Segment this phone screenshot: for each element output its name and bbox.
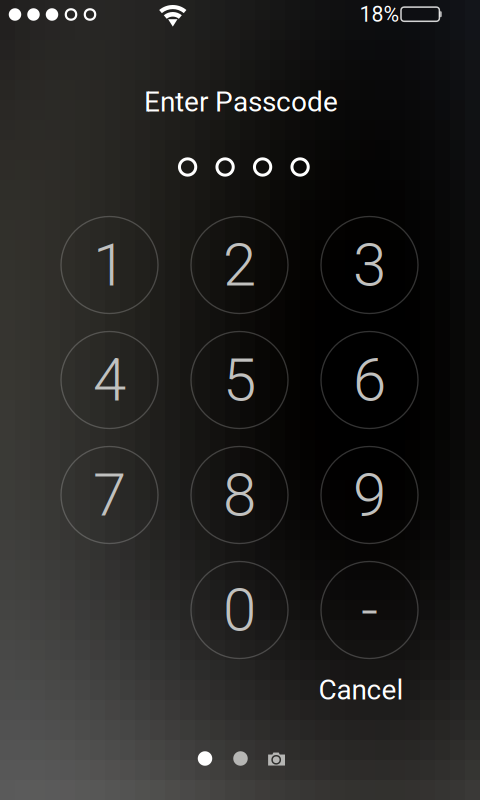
staticText: 1 [93, 230, 126, 300]
button[interactable]: 0 [191, 561, 288, 658]
staticText: - [361, 575, 378, 645]
button[interactable]: Cancel [306, 671, 416, 709]
staticText: 3 [353, 230, 386, 300]
button[interactable]: 7 [61, 446, 158, 543]
staticText: 7 [93, 460, 126, 530]
staticText: 5 [223, 345, 256, 415]
button[interactable]: 3 [321, 216, 418, 313]
staticText: 18% [359, 2, 399, 27]
staticText: 6 [353, 345, 386, 415]
button[interactable]: 1 [61, 216, 158, 313]
button[interactable]: 9 [321, 446, 418, 543]
button[interactable]: 5 [191, 331, 288, 428]
button[interactable]: 4 [61, 331, 158, 428]
button[interactable]: 6 [321, 331, 418, 428]
button[interactable]: Camera [267, 748, 286, 770]
staticText: 0 [223, 575, 256, 645]
button[interactable]: - [321, 561, 418, 658]
staticText: Enter Passcode [144, 86, 338, 118]
button[interactable]: 8 [191, 446, 288, 543]
staticText: 9 [353, 460, 386, 530]
staticText: 2 [223, 230, 256, 300]
staticText: Cancel [318, 674, 403, 706]
staticText: 4 [93, 345, 126, 415]
button[interactable]: 2 [191, 216, 288, 313]
staticText: 8 [223, 460, 256, 530]
